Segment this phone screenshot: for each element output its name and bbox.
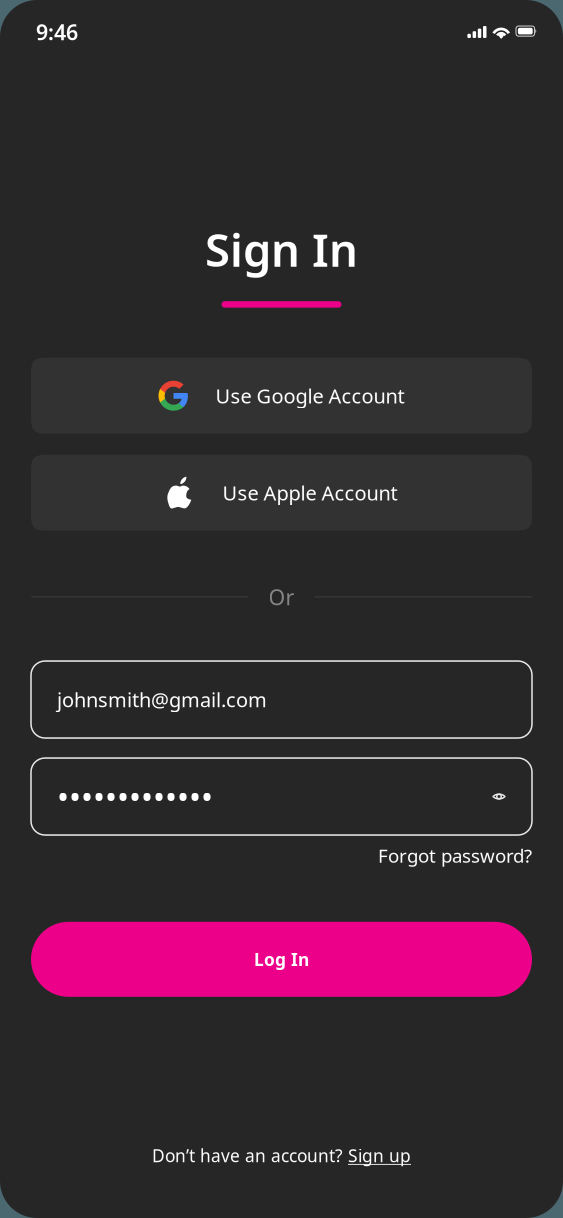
button[interactable]: Show password	[488, 788, 510, 804]
staticText: Or	[268, 583, 294, 611]
staticText: Use Apple Account	[222, 479, 397, 506]
button[interactable]: Don’t have an account?	[152, 1144, 411, 1167]
staticText: Sign In	[205, 219, 358, 279]
staticText: •••••••••••••	[57, 775, 213, 818]
staticText: Sign up	[348, 1144, 411, 1167]
button[interactable]: Use Google Account	[31, 358, 532, 434]
staticText: Forgot password?	[378, 843, 532, 868]
staticText: Don’t have an account?	[152, 1144, 343, 1167]
button[interactable]: Log In	[31, 922, 532, 997]
button[interactable]: Use Apple Account	[31, 455, 532, 531]
staticText: johnsmith@gmail.com	[57, 686, 267, 713]
button[interactable]: Forgot password?	[378, 843, 532, 868]
staticText: Use Google Account	[215, 382, 404, 409]
staticText: Log In	[254, 948, 309, 971]
staticText: 9:46	[36, 18, 78, 46]
